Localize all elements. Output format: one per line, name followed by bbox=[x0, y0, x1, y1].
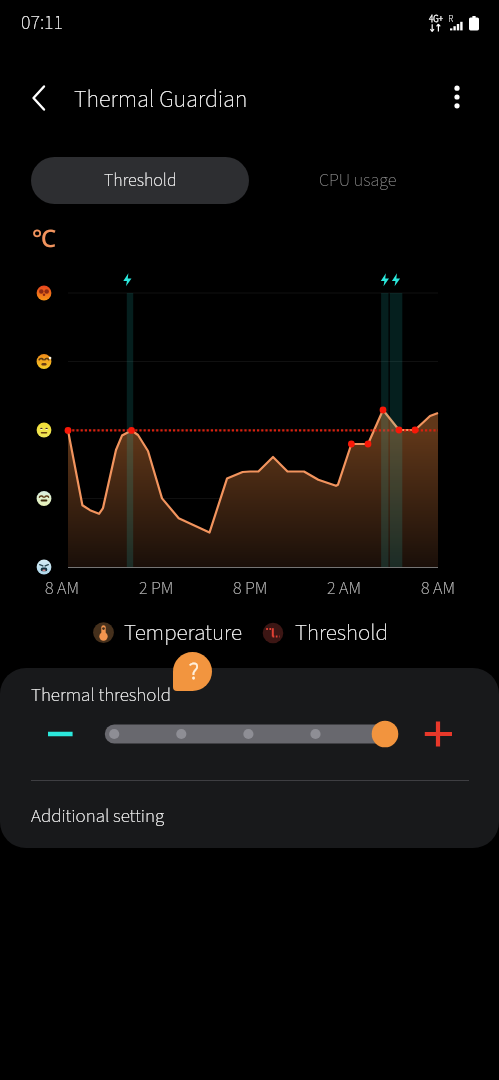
button[interactable]: Threshold bbox=[31, 157, 249, 204]
staticText: 8 PM bbox=[233, 576, 268, 602]
staticText: 8 AM bbox=[45, 576, 80, 602]
button[interactable]: Back bbox=[21, 80, 57, 116]
button[interactable]: Threshold slider bbox=[100, 718, 402, 750]
button[interactable]: CPU usage bbox=[249, 157, 467, 204]
staticText: Threshold bbox=[295, 616, 388, 649]
staticText: Thermal threshold bbox=[31, 682, 172, 709]
button[interactable]: Increase threshold bbox=[420, 718, 456, 754]
staticText: CPU usage bbox=[319, 168, 397, 194]
button[interactable]: Additional setting bbox=[0, 792, 499, 848]
staticText: 07:11 bbox=[21, 9, 63, 37]
staticText: R bbox=[448, 12, 454, 26]
button[interactable]: More options bbox=[438, 78, 476, 116]
staticText: 4G+ bbox=[429, 13, 443, 26]
staticText: ℃ bbox=[32, 221, 56, 254]
staticText: Threshold bbox=[104, 168, 177, 194]
staticText: 8 AM bbox=[421, 576, 456, 602]
staticText: ? bbox=[189, 653, 199, 689]
staticText: Temperature bbox=[124, 616, 242, 649]
staticText: 2 AM bbox=[327, 576, 362, 602]
staticText: 2 PM bbox=[139, 576, 174, 602]
staticText: Additional setting bbox=[31, 803, 165, 830]
button[interactable]: Decrease threshold bbox=[38, 714, 82, 754]
button[interactable]: Help bbox=[173, 652, 212, 691]
staticText: Thermal Guardian bbox=[74, 82, 248, 116]
